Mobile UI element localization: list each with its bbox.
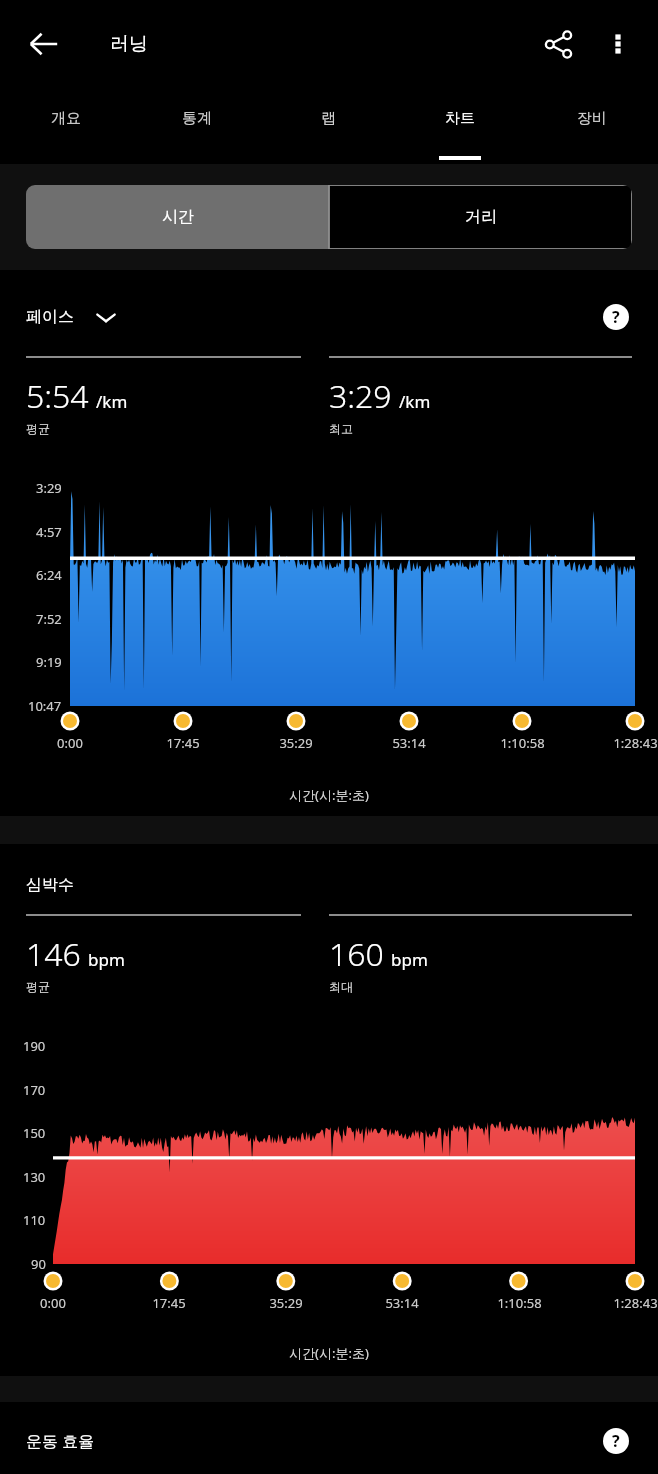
staticText: 4:57 [36, 523, 62, 541]
staticText: 35:29 [269, 1294, 303, 1312]
staticText: /km [96, 390, 128, 413]
staticText: 시간(시:분:초) [0, 1344, 658, 1362]
staticText: 3:29 [36, 479, 62, 497]
staticText: 17:45 [152, 1294, 186, 1312]
staticText: 1:28:43 [613, 1294, 658, 1312]
staticText: 90 [31, 1255, 46, 1273]
button[interactable]: Share [530, 16, 586, 72]
button[interactable]: 통계 [131, 88, 262, 164]
staticText: /km [399, 390, 431, 413]
staticText: 1:10:58 [500, 734, 545, 752]
staticText: 장비 [577, 109, 607, 128]
staticText: 190 [23, 1037, 46, 1055]
button[interactable]: 장비 [526, 88, 658, 164]
staticText: 시간(시:분:초) [0, 786, 658, 804]
staticText: 3:29 [329, 374, 392, 418]
button[interactable]: 운동 효율 [26, 1430, 95, 1452]
staticText: ? [612, 1430, 620, 1452]
staticText: 5:54 [26, 374, 89, 418]
staticText: 운동 효율 [26, 1430, 95, 1452]
staticText: 개요 [51, 109, 81, 128]
button[interactable]: 시간 [26, 185, 329, 249]
staticText: bpm [391, 948, 428, 971]
staticText: 심박수 [26, 875, 74, 895]
staticText: 7:52 [36, 610, 62, 628]
staticText: 차트 [445, 109, 475, 128]
staticText: 0:00 [40, 1294, 66, 1312]
staticText: 170 [23, 1081, 46, 1099]
button[interactable]: 페이스 [26, 305, 118, 329]
staticText: ? [612, 306, 620, 328]
staticText: 10:47 [28, 697, 62, 715]
staticText: 35:29 [279, 734, 313, 752]
staticText: 150 [23, 1124, 46, 1142]
staticText: 거리 [465, 207, 497, 227]
staticText: 9:19 [36, 653, 62, 671]
button[interactable]: Help [596, 1421, 636, 1461]
staticText: 130 [23, 1168, 46, 1186]
staticText: 통계 [182, 109, 212, 128]
staticText: bpm [88, 948, 125, 971]
staticText: 6:24 [36, 566, 62, 584]
button[interactable]: More options [592, 18, 644, 70]
staticText: 160 [329, 932, 384, 976]
staticText: 최대 [329, 979, 353, 994]
button[interactable]: 랩 [262, 88, 394, 164]
staticText: 페이스 [26, 307, 74, 327]
button[interactable]: 거리 [329, 185, 632, 249]
staticText: 53:14 [385, 1294, 419, 1312]
staticText: 17:45 [166, 734, 200, 752]
button[interactable]: 심박수 [26, 875, 74, 895]
staticText: 0:00 [57, 734, 83, 752]
button[interactable]: 차트 [394, 88, 526, 164]
button[interactable]: Back [16, 16, 72, 72]
staticText: 시간 [162, 207, 194, 227]
button[interactable]: Help [596, 297, 636, 337]
staticText: 최고 [329, 421, 353, 436]
staticText: 러닝 [110, 32, 148, 56]
staticText: 53:14 [392, 734, 426, 752]
staticText: 평균 [26, 979, 50, 994]
button[interactable]: 개요 [0, 88, 131, 164]
staticText: 146 [26, 932, 81, 976]
staticText: 110 [23, 1211, 46, 1229]
staticText: 1:28:43 [613, 734, 658, 752]
staticText: 랩 [321, 109, 336, 128]
staticText: 1:10:58 [497, 1294, 542, 1312]
staticText: 평균 [26, 421, 50, 436]
